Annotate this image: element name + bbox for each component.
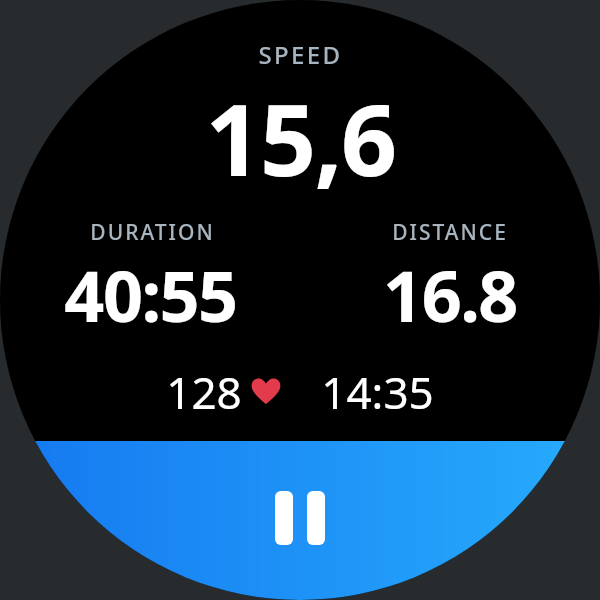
staticText: 15,6 (205, 71, 396, 204)
staticText: 16.8 (383, 247, 517, 342)
staticText: 128 (166, 362, 242, 422)
staticText: DISTANCE (392, 218, 508, 247)
staticText: 14:35 (321, 362, 434, 422)
button[interactable]: Pause workout (0, 0, 600, 600)
staticText: DURATION (90, 218, 215, 247)
staticText: SPEED (258, 38, 343, 71)
staticText: 40:55 (64, 247, 237, 342)
